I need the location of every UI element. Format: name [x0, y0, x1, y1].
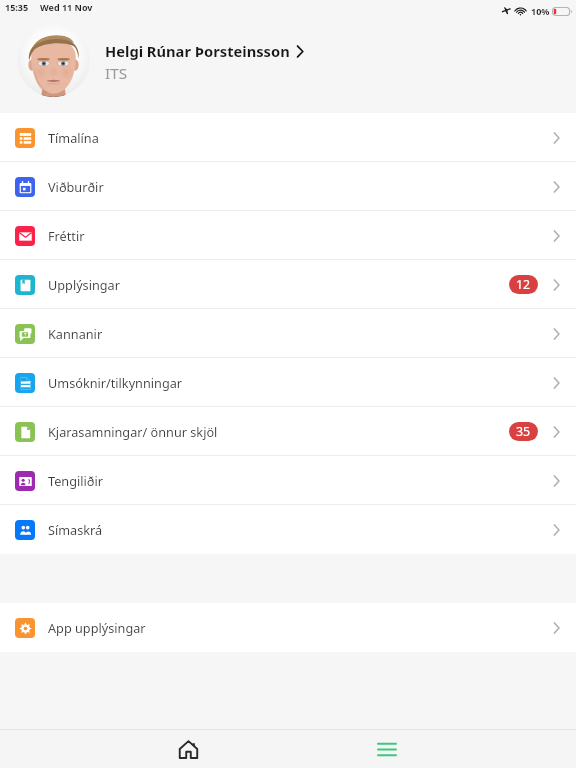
staticText: Wed 11 Nov	[40, 1, 93, 13]
staticText: Upplýsingar	[48, 276, 120, 293]
staticText: Símaskrá	[48, 521, 103, 538]
staticText: Umsóknir/tilkynningar	[48, 374, 183, 391]
button[interactable]: Helgi Rúnar Þorsteinsson	[0, 19, 576, 113]
button[interactable]: Kjarasamningar/ önnur skjöl	[0, 407, 576, 456]
button[interactable]: App upplýsingar	[0, 603, 576, 652]
staticText: 12	[516, 276, 531, 293]
button[interactable]: Upplýsingar	[0, 260, 576, 309]
staticText: Kannanir	[48, 325, 103, 342]
staticText: Viðburðir	[48, 178, 104, 195]
staticText: Tengiliðir	[48, 472, 103, 489]
button[interactable]: Menu	[288, 730, 576, 768]
staticText: 15:35	[5, 1, 29, 13]
button[interactable]: Fréttir	[0, 211, 576, 260]
button[interactable]: Símaskrá	[0, 505, 576, 554]
button[interactable]: Kannanir	[0, 309, 576, 358]
staticText: Tímalína	[48, 129, 99, 146]
staticText: App upplýsingar	[48, 619, 146, 636]
button[interactable]: Home	[0, 730, 288, 768]
button[interactable]: Umsóknir/tilkynningar	[0, 358, 576, 407]
staticText: Helgi Rúnar Þorsteinsson	[105, 41, 290, 61]
button[interactable]: Tímalína	[0, 113, 576, 162]
button[interactable]: Tengiliðir	[0, 456, 576, 505]
staticText: Kjarasamningar/ önnur skjöl	[48, 423, 218, 440]
staticText: 10%	[531, 5, 550, 17]
staticText: ITS	[105, 63, 128, 84]
staticText: 35	[516, 423, 531, 440]
button[interactable]: Viðburðir	[0, 162, 576, 211]
staticText: Fréttir	[48, 227, 85, 244]
